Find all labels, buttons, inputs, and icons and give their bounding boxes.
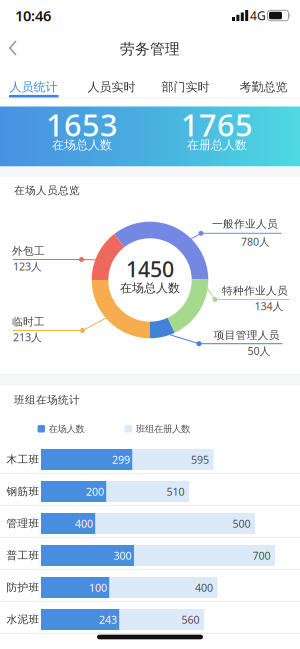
staticText: 普工班 <box>6 549 39 562</box>
staticText: 一般作业人员 <box>212 217 278 230</box>
staticText: 213人 <box>13 330 42 344</box>
staticText: 临时工 <box>12 315 45 328</box>
staticText: 510 <box>166 484 184 499</box>
staticText: 木工班 <box>6 453 39 466</box>
staticText: 管理班 <box>6 517 39 530</box>
staticText: 300 <box>113 548 131 563</box>
staticText: 防护班 <box>6 581 39 594</box>
staticText: 1450 <box>126 255 174 283</box>
staticText: 特种作业人员 <box>222 284 288 297</box>
staticText: 在场人员总览 <box>14 184 80 197</box>
staticText: 水泥班 <box>6 613 39 626</box>
staticText: 在场总人数 <box>120 281 180 295</box>
staticText: 部门实时 <box>161 80 209 94</box>
button[interactable]: 人员统计 <box>0 69 68 105</box>
staticText: 在册总人数 <box>187 138 247 152</box>
staticText: 10:46 <box>15 6 51 25</box>
staticText: 钢筋班 <box>6 485 39 498</box>
staticText: 200 <box>86 484 104 499</box>
button[interactable]: Back <box>0 33 29 63</box>
staticText: 人员统计 <box>9 80 57 94</box>
staticText: 人员实时 <box>87 80 135 94</box>
staticText: 1653 <box>46 104 118 145</box>
staticText: 考勤总览 <box>239 80 287 94</box>
staticText: 外包工 <box>12 244 45 257</box>
staticText: 劳务管理 <box>120 40 180 58</box>
staticText: 1765 <box>181 104 253 145</box>
staticText: 500 <box>232 516 250 531</box>
staticText: 4G <box>250 7 266 23</box>
staticText: 在场人数 <box>49 423 85 435</box>
staticText: 560 <box>181 612 199 627</box>
staticText: 700 <box>252 548 270 563</box>
staticText: 400 <box>195 580 213 595</box>
button[interactable]: 人员实时 <box>76 69 146 105</box>
staticText: 595 <box>191 452 209 467</box>
staticText: 100 <box>89 580 107 595</box>
staticText: 123人 <box>13 259 42 273</box>
button[interactable]: 部门实时 <box>150 69 220 105</box>
staticText: 项目管理人员 <box>214 328 280 342</box>
staticText: 299 <box>112 452 130 467</box>
staticText: 班组在场统计 <box>14 393 80 406</box>
staticText: 400 <box>75 516 93 531</box>
staticText: 班组在册人数 <box>136 423 190 435</box>
staticText: 134人 <box>254 299 283 313</box>
button[interactable]: 考勤总览 <box>228 69 298 105</box>
staticText: 在场总人数 <box>52 138 112 152</box>
staticText: 243 <box>99 612 117 627</box>
staticText: 780人 <box>241 234 270 249</box>
staticText: 50人 <box>247 344 270 358</box>
